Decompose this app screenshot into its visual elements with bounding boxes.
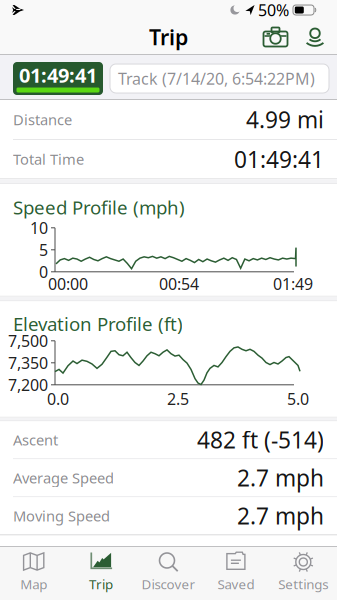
staticText: 4.99 mi — [246, 104, 324, 134]
staticText: 0 — [39, 261, 48, 282]
staticText: 7,350 — [8, 352, 48, 373]
staticText: 5.0 — [287, 388, 309, 409]
staticText: Trip — [89, 575, 113, 593]
staticText: 01:49:41 — [19, 62, 97, 88]
staticText: 01:49:41 — [234, 144, 324, 174]
button[interactable]: Trip Timer — [13, 62, 103, 95]
staticText: Speed Profile (mph) — [13, 195, 185, 220]
staticText: Trip — [149, 23, 188, 51]
staticText: 01:49 — [273, 273, 313, 294]
staticText: Elevation Profile (ft) — [13, 311, 183, 336]
staticText: Saved — [217, 575, 254, 593]
staticText: Moving Speed — [13, 506, 110, 526]
staticText: 5 — [39, 239, 48, 260]
button[interactable]: Discover — [135, 547, 202, 600]
staticText: 2.7 mph — [237, 501, 324, 531]
staticText: 00:00 — [48, 273, 88, 294]
staticText: 7,200 — [8, 374, 48, 395]
button[interactable]: Camera — [255, 27, 296, 47]
button[interactable]: Track Location — [296, 27, 334, 46]
staticText: 2.7 mph — [237, 463, 324, 493]
staticText: Track (7/14/20, 6:54:22PM) — [118, 68, 315, 89]
staticText: 50% — [258, 0, 289, 21]
button[interactable]: Trip — [67, 547, 135, 600]
button[interactable]: Track name — [103, 64, 337, 93]
staticText: Map — [20, 575, 47, 593]
staticText: Total Time — [13, 149, 84, 169]
staticText: Distance — [13, 110, 72, 129]
button[interactable]: Saved — [202, 547, 270, 600]
staticText: 2.5 — [167, 388, 189, 409]
staticText: 00:54 — [159, 273, 199, 294]
staticText: Ascent — [13, 430, 58, 450]
staticText: Settings — [278, 575, 328, 593]
staticText: 0.0 — [47, 388, 69, 409]
staticText: Average Speed — [13, 468, 114, 488]
staticText: 482 ft (-514) — [197, 425, 324, 455]
staticText: Discover — [141, 575, 195, 593]
button[interactable]: Map — [0, 547, 67, 600]
staticText: 7,500 — [8, 330, 48, 351]
button[interactable]: Settings — [270, 547, 337, 600]
staticText: 10 — [30, 217, 48, 238]
